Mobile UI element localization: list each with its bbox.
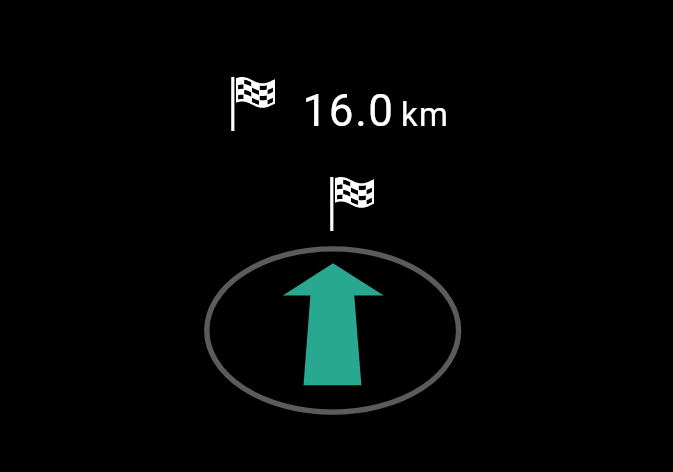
button[interactable]: 16.0 kilometres to finish bbox=[228, 72, 453, 134]
button[interactable]: Next waypoint bbox=[326, 172, 378, 234]
button[interactable]: Continue straight ahead bbox=[203, 245, 463, 417]
